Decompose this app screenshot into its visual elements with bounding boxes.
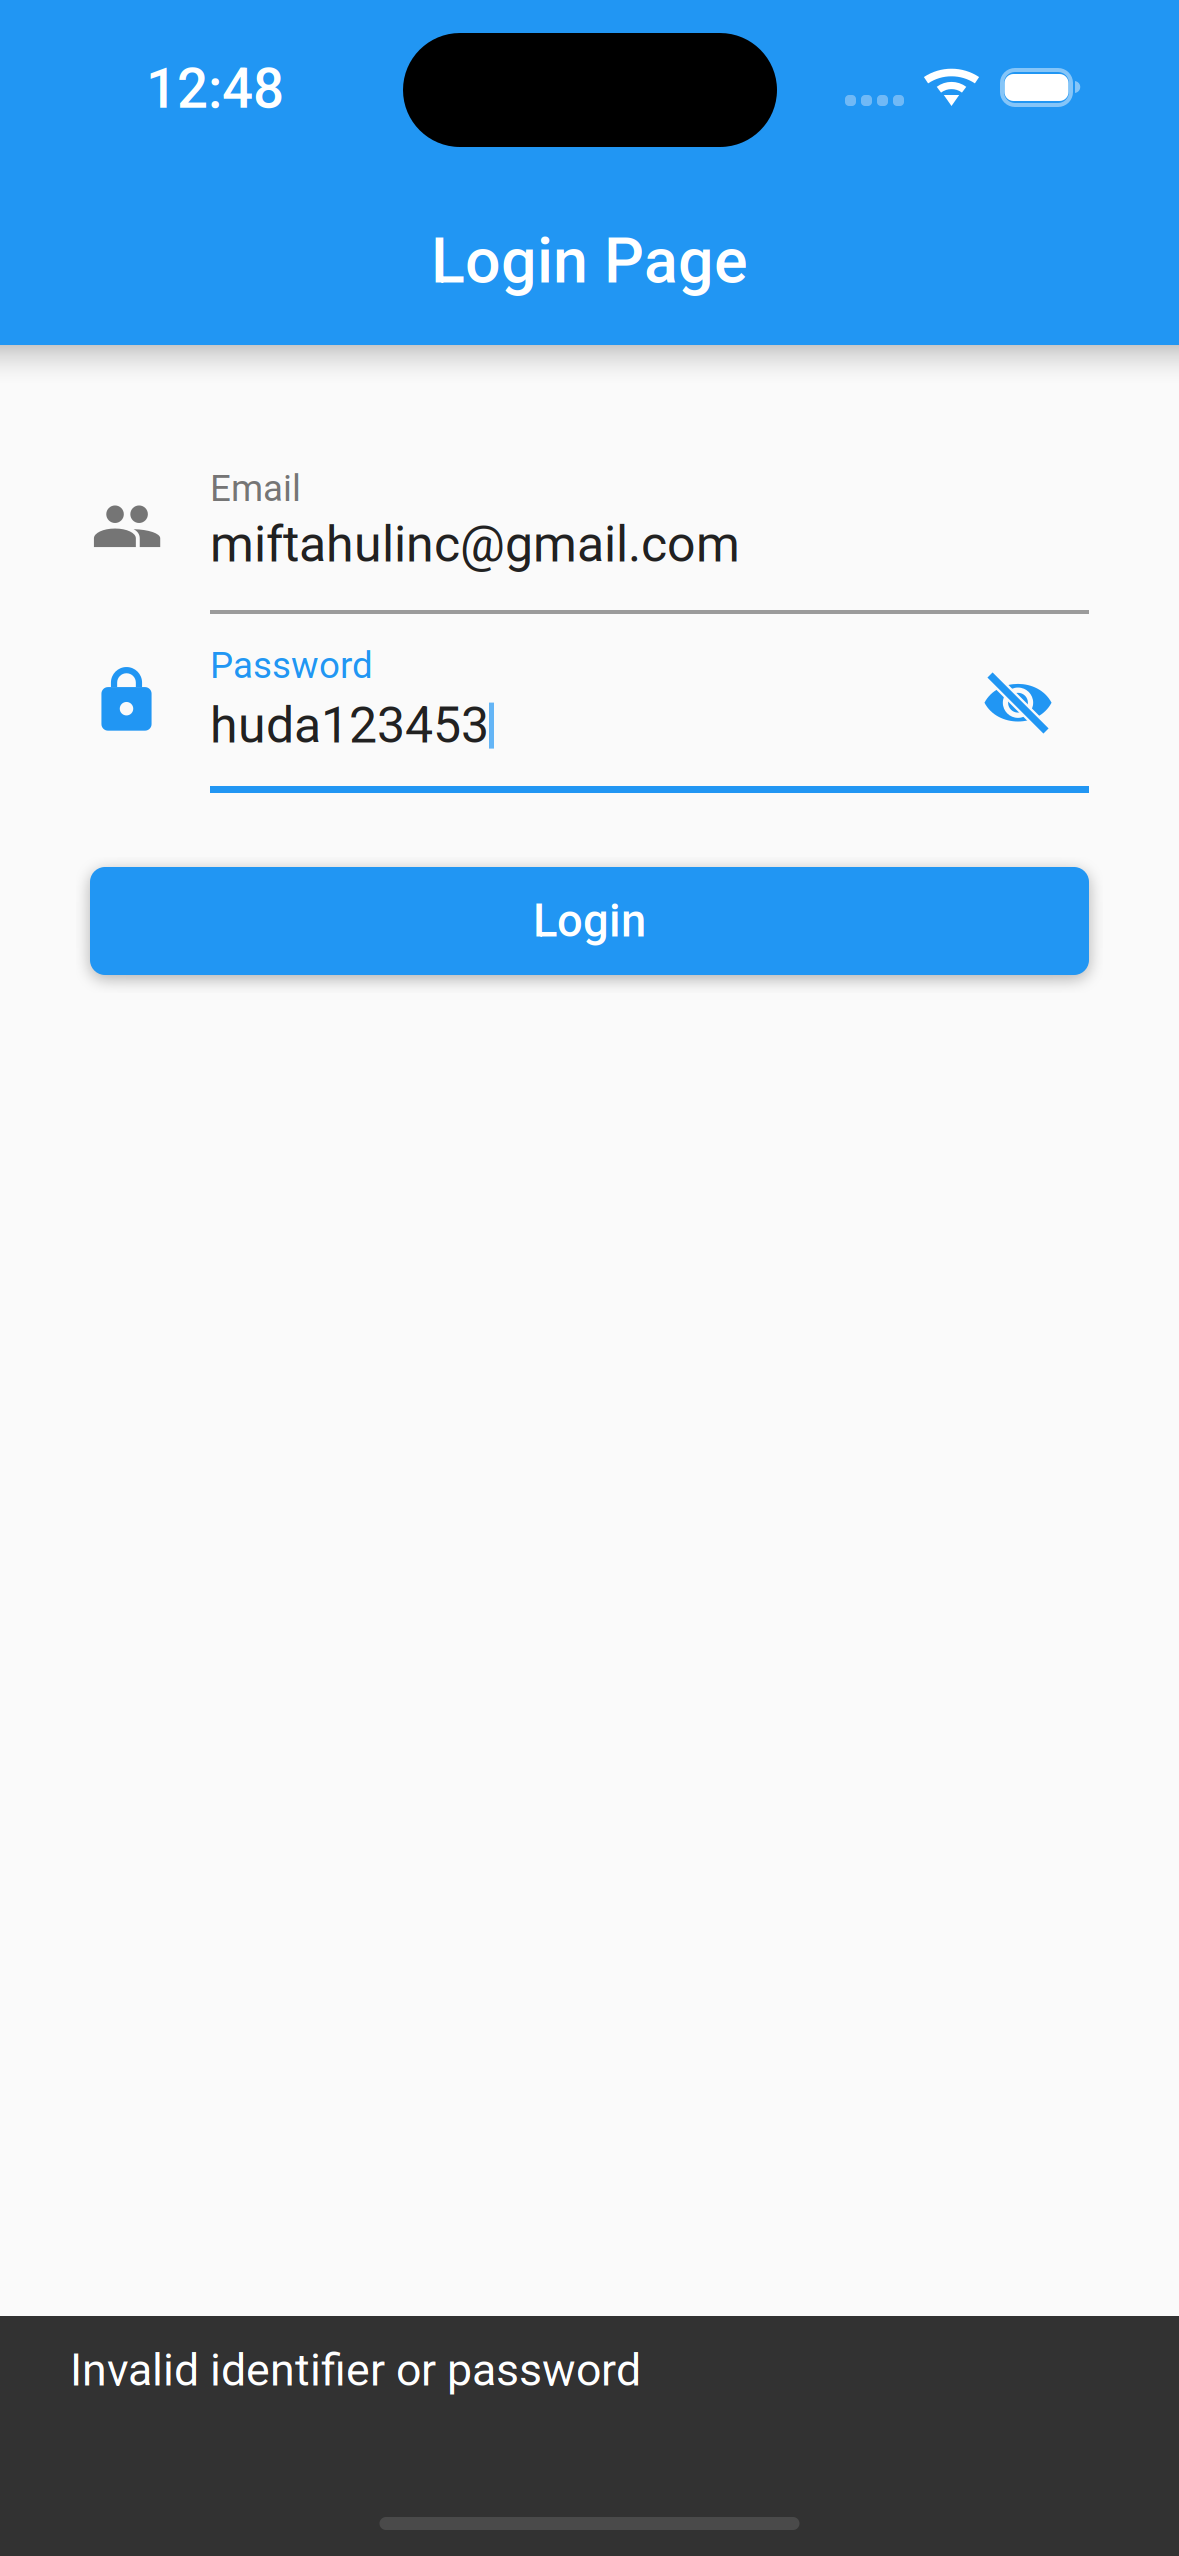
button[interactable]: Login [90,867,1089,975]
staticText: miftahulinc@gmail.com [210,515,740,574]
staticText: Email [210,467,301,510]
staticText: huda123453 [210,696,489,755]
staticText: Login [533,894,646,947]
staticText: Login Page [431,224,748,298]
staticText: Password [210,644,373,687]
staticText: Invalid identifier or password [70,2344,641,2396]
button[interactable]: Email [0,467,1179,567]
staticText: 12:48 [146,57,284,121]
button[interactable]: Password [90,648,993,748]
button[interactable]: Show password [993,648,1089,748]
